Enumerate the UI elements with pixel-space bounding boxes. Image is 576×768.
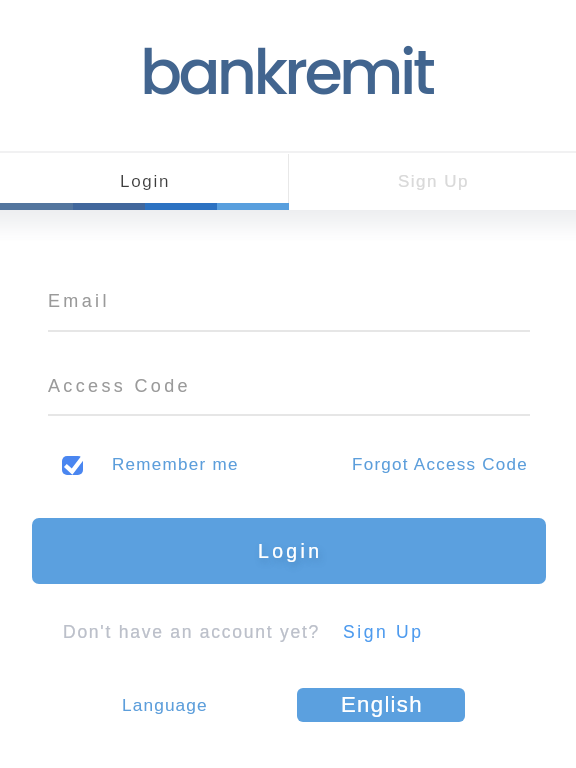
staticText: Don't have an account yet?: [63, 622, 321, 642]
staticText: Login: [120, 172, 171, 191]
staticText: Remember me: [112, 455, 239, 474]
button[interactable]: Sign Up: [288, 153, 576, 203]
staticText: English: [341, 692, 423, 717]
button[interactable]: Sign Up: [343, 622, 424, 642]
staticText: bankremit: [140, 29, 433, 116]
staticText: Sign Up: [398, 172, 469, 191]
button[interactable]: Forgot Access Code: [352, 455, 528, 474]
staticText: Access Code: [48, 376, 191, 396]
button[interactable]: Email: [48, 278, 530, 334]
button[interactable]: Access Code: [48, 363, 530, 418]
button[interactable]: Login: [32, 518, 546, 584]
button[interactable]: Remember me checkbox: [62, 456, 239, 475]
staticText: Login: [258, 540, 323, 562]
other: Remember me checkbox: [62, 456, 83, 475]
button[interactable]: Login: [0, 153, 288, 203]
button[interactable]: English: [297, 688, 465, 722]
button[interactable]: Language: [122, 695, 208, 714]
staticText: Email: [48, 291, 110, 311]
